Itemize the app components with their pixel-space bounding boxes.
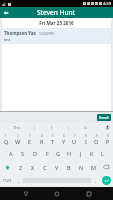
button[interactable]: 1 xyxy=(0,132,12,146)
staticText: E xyxy=(28,138,32,145)
button[interactable]: M xyxy=(87,160,99,174)
staticText: U xyxy=(72,138,77,145)
button[interactable]: G xyxy=(53,146,64,160)
staticText: 2 xyxy=(17,134,19,138)
staticText: X xyxy=(31,164,35,171)
staticText: R xyxy=(40,138,44,145)
staticText: Thompson Yao xyxy=(4,30,37,36)
staticText: 6 xyxy=(63,134,65,138)
staticText: Send xyxy=(99,115,109,120)
staticText: Fri Mar 25 2016 xyxy=(39,20,74,26)
staticText: 0 xyxy=(107,134,109,138)
staticText: 5 xyxy=(52,134,54,138)
staticText: 12:04 PM xyxy=(39,31,54,36)
staticText: 3 xyxy=(29,134,31,138)
staticText: T xyxy=(51,138,55,145)
button[interactable]: A xyxy=(5,146,17,160)
button[interactable]: Send xyxy=(97,114,111,121)
button[interactable]: 6 xyxy=(58,132,69,146)
button[interactable]: K xyxy=(86,146,97,160)
button[interactable]: Back xyxy=(0,7,11,18)
staticText: It xyxy=(84,125,87,131)
staticText: H xyxy=(67,150,72,157)
button[interactable]: 9 xyxy=(91,132,102,146)
button[interactable]: F xyxy=(41,146,53,160)
staticText: M xyxy=(91,164,96,171)
button[interactable]: Recents xyxy=(82,187,95,200)
staticText: Q xyxy=(4,138,9,145)
staticText: test xyxy=(4,37,11,42)
staticText: B xyxy=(67,164,71,171)
button[interactable]: Voice input xyxy=(102,123,113,132)
staticText: K xyxy=(90,150,94,157)
staticText: Z xyxy=(19,164,23,171)
staticText: ?123 xyxy=(3,178,12,183)
staticText: W xyxy=(15,138,21,145)
button[interactable]: , xyxy=(15,174,22,187)
button[interactable]: Z xyxy=(14,160,27,174)
button[interactable]: Backspace xyxy=(99,160,113,174)
button[interactable]: 8 xyxy=(80,132,91,146)
button[interactable]: Enter xyxy=(102,176,111,185)
staticText: , xyxy=(18,178,20,184)
button[interactable]: ?123 xyxy=(0,174,15,187)
staticText: J xyxy=(80,150,82,157)
button[interactable]: Thompson Yao xyxy=(2,28,111,44)
staticText: F xyxy=(46,150,49,157)
staticText: I xyxy=(85,138,87,145)
button[interactable]: N xyxy=(75,160,87,174)
staticText: 9 xyxy=(96,134,98,138)
staticText: 1 xyxy=(5,134,7,138)
staticText: 8 xyxy=(85,134,87,138)
staticText: G xyxy=(56,150,61,157)
button[interactable]: V xyxy=(51,160,63,174)
staticText: P xyxy=(106,138,110,145)
button[interactable]: L xyxy=(97,146,108,160)
staticText: A xyxy=(9,150,13,157)
button[interactable]: 2 xyxy=(12,132,24,146)
staticText: S xyxy=(21,150,25,157)
button[interactable]: H xyxy=(64,146,75,160)
button[interactable]: S xyxy=(17,146,29,160)
button[interactable]: Home xyxy=(50,187,63,200)
staticText: I xyxy=(51,125,53,131)
staticText: 4:39 xyxy=(103,1,111,6)
button[interactable]: . xyxy=(92,174,99,187)
button[interactable]: It xyxy=(69,123,102,132)
button[interactable]: 3 xyxy=(24,132,36,146)
button[interactable]: 0 xyxy=(102,132,113,146)
button[interactable]: D xyxy=(29,146,41,160)
staticText: Y xyxy=(62,138,66,145)
button[interactable]: 5 xyxy=(47,132,58,146)
button[interactable]: J xyxy=(75,146,86,160)
staticText: 4 xyxy=(41,134,43,138)
button[interactable]: The xyxy=(0,123,34,132)
button[interactable]: 4 xyxy=(36,132,47,146)
button[interactable]: I xyxy=(35,123,68,132)
staticText: O xyxy=(94,138,99,145)
button[interactable]: Shift xyxy=(0,160,14,174)
button[interactable]: X xyxy=(27,160,39,174)
staticText: V xyxy=(55,164,59,171)
staticText: . xyxy=(95,178,97,184)
staticText: The xyxy=(13,125,21,131)
button[interactable]: Back xyxy=(19,187,32,200)
staticText: D xyxy=(33,150,38,157)
button[interactable]: C xyxy=(39,160,51,174)
staticText: N xyxy=(79,164,84,171)
button[interactable]: 7 xyxy=(69,132,80,146)
staticText: 7 xyxy=(74,134,76,138)
staticText: L xyxy=(101,150,104,157)
staticText: C xyxy=(43,164,47,171)
button[interactable]: B xyxy=(63,160,75,174)
staticText: Steven Hunt xyxy=(37,8,76,17)
